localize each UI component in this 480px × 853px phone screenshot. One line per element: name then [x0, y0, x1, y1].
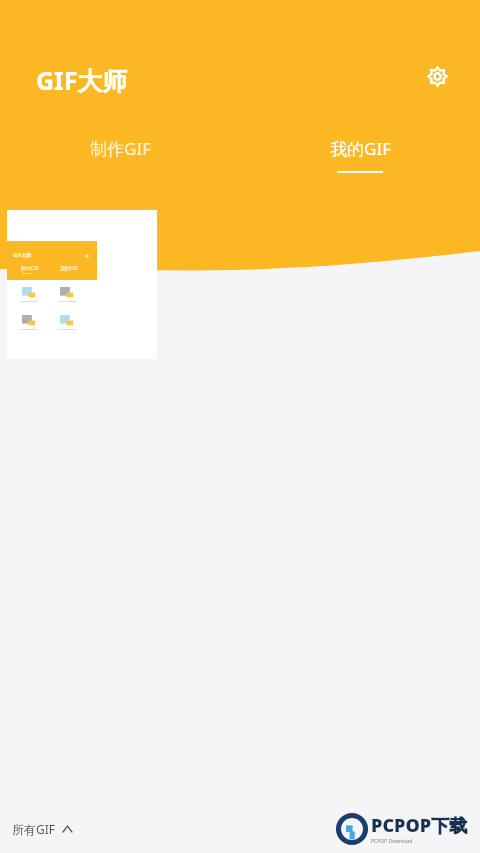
staticText: 所有GIF	[12, 821, 56, 837]
button[interactable]: 我的GIF	[240, 132, 480, 178]
staticText: PCPOP Download	[371, 838, 413, 845]
button[interactable]: Settings	[420, 59, 454, 93]
staticText: GIF大师	[36, 63, 128, 97]
staticText: PCPOP下载	[371, 813, 468, 838]
button[interactable]: 所有GIF	[6, 813, 78, 845]
staticText: 制作GIF	[21, 265, 39, 272]
button[interactable]: 制作GIF	[0, 132, 240, 178]
staticText: 我的GIF	[60, 265, 78, 272]
staticText: GIF大师	[13, 252, 32, 259]
staticText: 制作GIF	[90, 137, 151, 160]
button[interactable]: GIF大师	[7, 210, 157, 359]
staticText: 我的GIF	[330, 137, 391, 160]
